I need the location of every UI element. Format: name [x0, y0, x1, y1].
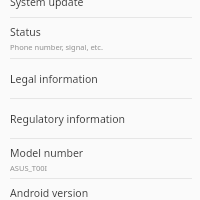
staticText: Phone number, signal, etc. — [10, 42, 103, 52]
staticText: System update — [10, 0, 84, 9]
staticText: Model number — [10, 146, 84, 160]
staticText: Legal information — [10, 72, 98, 86]
staticText: Android version — [10, 186, 89, 200]
button[interactable]: Regulatory information — [0, 99, 200, 139]
button[interactable]: Status — [0, 18, 200, 59]
button[interactable]: Android version — [0, 179, 200, 200]
button[interactable]: Model number — [0, 139, 200, 179]
button[interactable]: System update — [0, 0, 200, 18]
staticText: Status — [10, 25, 41, 39]
button[interactable]: Legal information — [0, 59, 200, 99]
staticText: ASUS_T00I — [10, 163, 48, 173]
staticText: Regulatory information — [10, 112, 126, 126]
